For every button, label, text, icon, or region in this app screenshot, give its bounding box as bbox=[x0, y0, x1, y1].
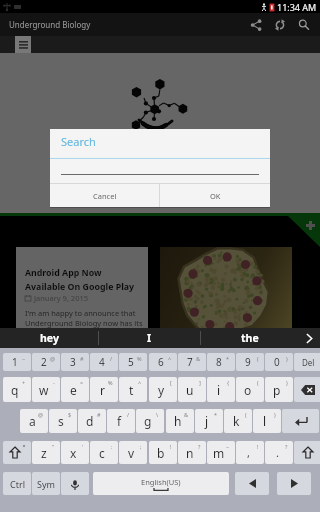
staticText: Del bbox=[302, 357, 315, 368]
button[interactable]: Cursor right bbox=[277, 472, 311, 495]
button[interactable]: v bbox=[119, 441, 147, 464]
button[interactable]: l bbox=[253, 409, 281, 433]
staticText: o bbox=[244, 382, 252, 398]
button[interactable]: Search bbox=[292, 13, 316, 36]
staticText: % bbox=[137, 355, 142, 362]
button[interactable] bbox=[160, 247, 292, 337]
button[interactable]: the bbox=[201, 328, 298, 348]
button[interactable]: e bbox=[61, 377, 89, 402]
button[interactable]: Sym bbox=[32, 472, 60, 495]
staticText: q bbox=[11, 382, 19, 398]
button[interactable]: Del bbox=[294, 353, 320, 371]
staticText: 6 bbox=[158, 355, 164, 369]
staticText: $ bbox=[68, 411, 72, 418]
button[interactable]: Voice input bbox=[61, 472, 89, 495]
staticText: j bbox=[205, 413, 209, 429]
button[interactable]: Ctrl bbox=[3, 472, 31, 495]
staticText: m bbox=[213, 445, 225, 461]
button[interactable]: x bbox=[61, 441, 89, 464]
staticText: - bbox=[53, 379, 55, 386]
staticText: ^ bbox=[168, 355, 172, 362]
button[interactable]: I bbox=[99, 328, 200, 348]
staticText: I bbox=[147, 331, 152, 345]
button[interactable]: a bbox=[20, 409, 48, 433]
staticText: b bbox=[157, 445, 165, 461]
staticText: , bbox=[247, 445, 250, 460]
button[interactable]: m bbox=[207, 441, 235, 464]
staticText: x bbox=[70, 445, 77, 461]
button[interactable]: y bbox=[149, 377, 177, 402]
staticText: r bbox=[100, 382, 105, 398]
button[interactable]: 7 bbox=[178, 353, 206, 371]
staticText: v bbox=[128, 445, 135, 461]
button[interactable]: 8 bbox=[207, 353, 235, 371]
staticText: & bbox=[184, 411, 189, 418]
button[interactable]: Enter bbox=[282, 409, 319, 433]
button[interactable]: p bbox=[265, 377, 293, 402]
staticText: + bbox=[22, 379, 26, 386]
staticText: ( bbox=[257, 355, 259, 362]
button[interactable]: q bbox=[3, 377, 31, 402]
staticText: k bbox=[233, 413, 240, 429]
button[interactable]: Shift bbox=[294, 441, 320, 464]
button[interactable]: Cancel bbox=[50, 184, 159, 207]
button[interactable]: More suggestions bbox=[298, 328, 320, 348]
button[interactable]: , bbox=[236, 441, 264, 464]
button[interactable]: Refresh bbox=[268, 13, 292, 36]
staticText: 7 bbox=[187, 355, 193, 369]
button[interactable]: Shift bbox=[3, 441, 31, 464]
button[interactable]: 4 bbox=[90, 353, 118, 371]
button[interactable]: 5 bbox=[119, 353, 147, 371]
staticText: 2 bbox=[41, 355, 47, 369]
button[interactable]: j bbox=[195, 409, 223, 433]
staticText: % bbox=[108, 379, 113, 386]
button[interactable]: 2 bbox=[32, 353, 60, 371]
staticText: z bbox=[41, 445, 47, 461]
button[interactable]: w bbox=[32, 377, 60, 402]
button[interactable]: u bbox=[178, 377, 206, 402]
button[interactable]: k bbox=[224, 409, 252, 433]
button[interactable]: c bbox=[90, 441, 118, 464]
button[interactable]: Space bbox=[93, 472, 229, 495]
button[interactable]: f bbox=[107, 409, 135, 433]
staticText: e bbox=[70, 382, 77, 398]
staticText: # bbox=[80, 355, 84, 362]
staticText: @ bbox=[50, 355, 55, 362]
button[interactable]: . bbox=[265, 441, 293, 464]
button[interactable]: h bbox=[166, 409, 194, 433]
staticText: English(US) bbox=[141, 477, 181, 487]
button[interactable]: i bbox=[207, 377, 235, 402]
staticText: hey bbox=[40, 331, 59, 345]
staticText: ~ bbox=[226, 443, 230, 450]
staticText: d bbox=[86, 413, 94, 429]
staticText: Ctrl bbox=[10, 478, 25, 490]
button[interactable]: 6 bbox=[149, 353, 177, 371]
button[interactable]: 9 bbox=[236, 353, 264, 371]
staticText: h bbox=[174, 413, 182, 429]
staticText: ? bbox=[198, 443, 201, 450]
button[interactable]: hey bbox=[0, 328, 98, 348]
staticText: l bbox=[263, 413, 267, 429]
button[interactable]: Backspace bbox=[294, 377, 320, 402]
button[interactable]: r bbox=[90, 377, 118, 402]
button[interactable]: t bbox=[119, 377, 147, 402]
button[interactable]: d bbox=[78, 409, 106, 433]
button[interactable]: Share bbox=[244, 13, 268, 36]
button[interactable]: b bbox=[149, 441, 177, 464]
button[interactable]: Android App Now Available On Google Play bbox=[16, 247, 148, 337]
button[interactable]: Cursor left bbox=[235, 472, 269, 495]
button[interactable]: 1 bbox=[3, 353, 31, 371]
staticText: OK bbox=[210, 191, 221, 201]
button[interactable]: 3 bbox=[61, 353, 89, 371]
button[interactable]: z bbox=[32, 441, 60, 464]
staticText: 1 bbox=[12, 355, 18, 369]
button[interactable]: o bbox=[236, 377, 264, 402]
button[interactable]: OK bbox=[160, 184, 270, 207]
button[interactable]: 0 bbox=[265, 353, 293, 371]
button[interactable]: s bbox=[49, 409, 77, 433]
button[interactable]: g bbox=[136, 409, 164, 433]
button[interactable]: Navigation drawer bbox=[15, 36, 31, 53]
button[interactable]: n bbox=[178, 441, 206, 464]
staticText: / bbox=[127, 411, 130, 418]
staticText: 11:34 AM bbox=[277, 1, 317, 13]
